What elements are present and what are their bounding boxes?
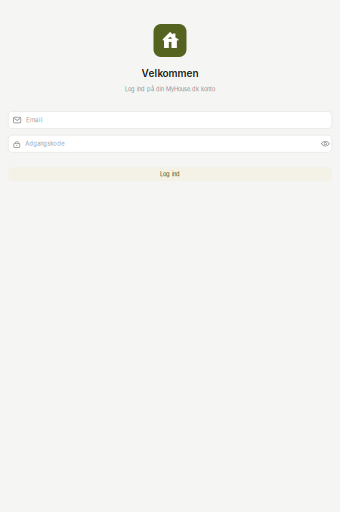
staticText: Adgangskode <box>25 140 64 147</box>
staticText: Log ind <box>160 171 180 178</box>
staticText: Log ind på din MyHouse.dk konto <box>125 86 215 92</box>
button[interactable]: Vis adgangskode <box>319 135 332 152</box>
staticText: Velkommen <box>141 67 198 79</box>
button[interactable]: Log ind <box>8 167 332 181</box>
staticText: Email <box>26 116 43 124</box>
